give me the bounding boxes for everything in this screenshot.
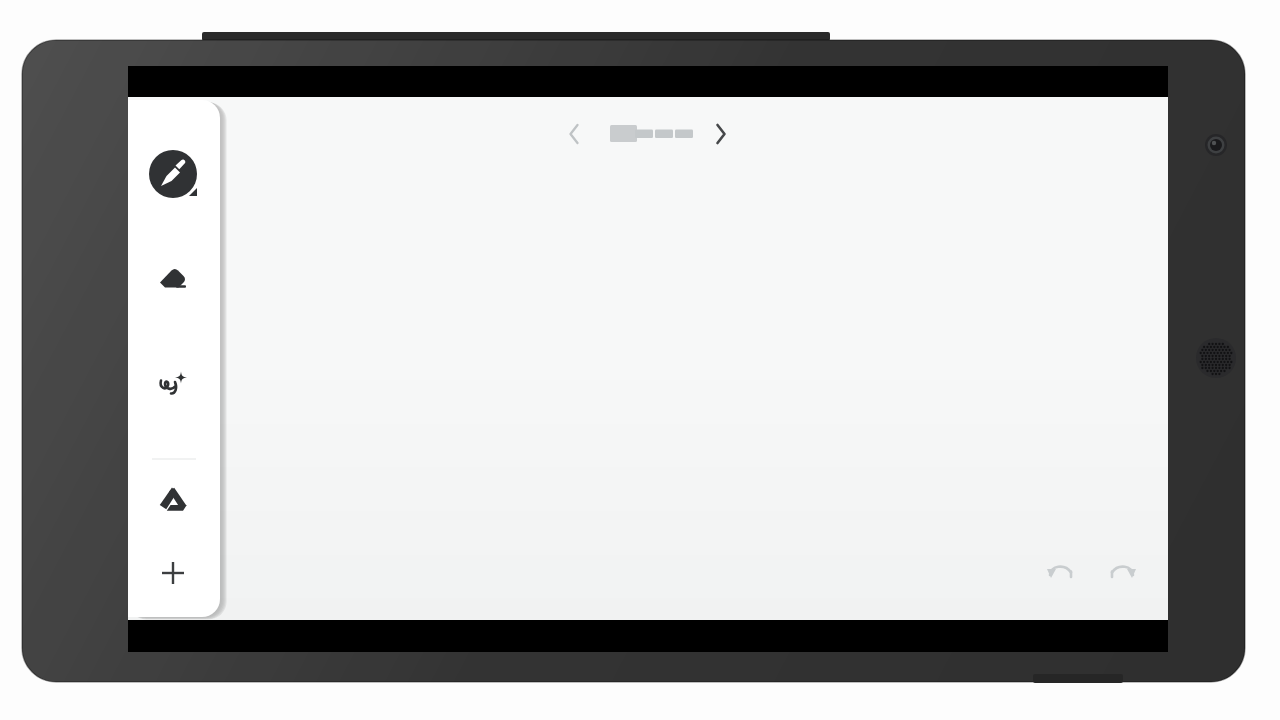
button[interactable]: Google Drive [149, 477, 197, 525]
button[interactable]: Eraser [149, 255, 197, 303]
button[interactable]: Add [149, 549, 197, 597]
button[interactable]: Redo [1100, 551, 1144, 595]
button[interactable]: Next page [703, 116, 739, 152]
button[interactable]: Pen tool [149, 150, 197, 198]
button[interactable]: Undo [1039, 551, 1083, 595]
button[interactable]: Magic select [149, 361, 197, 409]
button[interactable]: Previous page [556, 116, 592, 152]
